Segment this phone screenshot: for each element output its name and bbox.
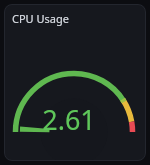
button[interactable]: CPU Usage	[4, 4, 146, 161]
other: CPU usage gauge 2.61 percent	[4, 4, 146, 161]
staticText: 2.61	[42, 101, 96, 138]
staticText: CPU Usage	[12, 11, 69, 26]
